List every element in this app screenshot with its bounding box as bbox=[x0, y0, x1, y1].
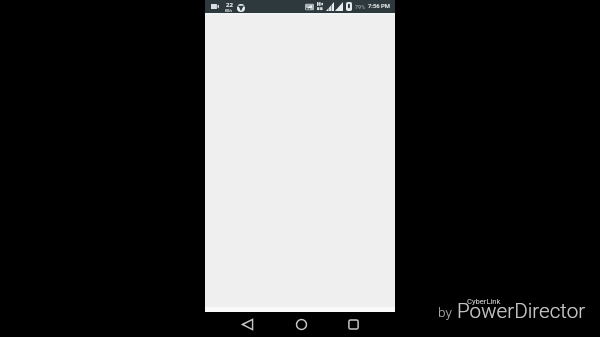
button[interactable]: Recent apps bbox=[341, 312, 365, 337]
staticText: by bbox=[438, 304, 452, 320]
staticText: 79% bbox=[355, 4, 366, 10]
staticText: CyberLink bbox=[467, 297, 501, 306]
staticText: 22 bbox=[226, 1, 233, 9]
staticText: KB/s bbox=[225, 9, 233, 13]
button[interactable]: Home bbox=[289, 312, 313, 337]
staticText: PowerDirector bbox=[457, 299, 586, 323]
staticText: 7:56 PM bbox=[368, 3, 390, 10]
button[interactable]: Back bbox=[235, 312, 259, 337]
